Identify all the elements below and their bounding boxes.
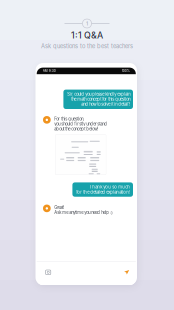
staticText: 1:1 Q&A (71, 30, 103, 41)
staticText: Ask questions to the best teachers (41, 43, 133, 49)
staticText: Thank you so much for the detailed expla… (76, 184, 130, 195)
staticText: Great! Ask me anytime you need help :) (54, 205, 113, 215)
staticText: 100% (122, 69, 130, 73)
staticText: Sir, could you please kindly explain the… (67, 92, 130, 107)
staticText: AM 9:30 (43, 69, 56, 73)
staticText: For this question, you should firstly un… (54, 116, 107, 131)
button[interactable]: Attach photo (46, 270, 51, 275)
staticText: 1 (86, 20, 88, 27)
button[interactable]: Send (124, 270, 129, 274)
